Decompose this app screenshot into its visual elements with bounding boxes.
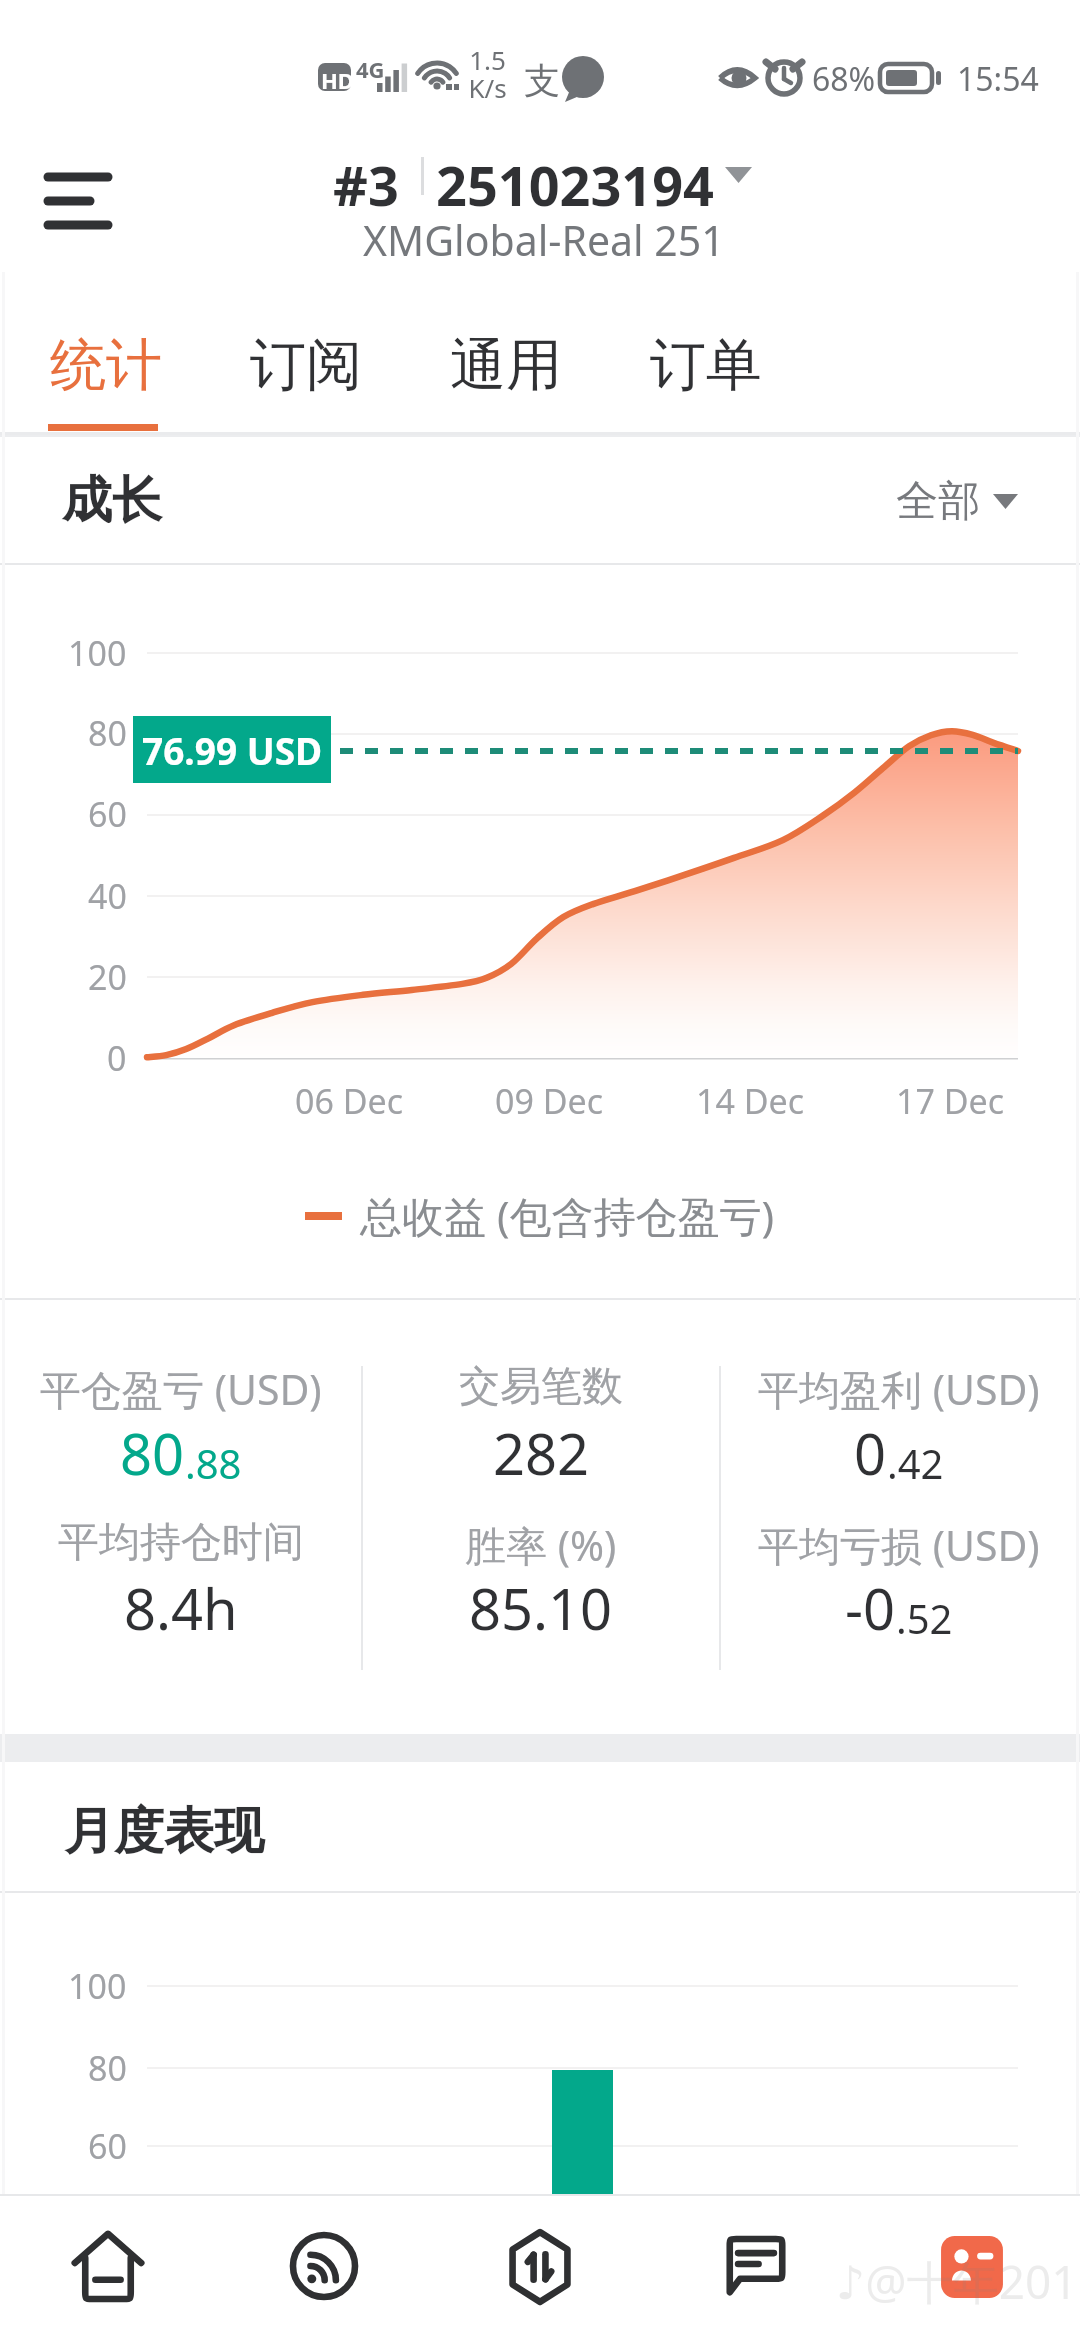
staticText: 平均持仓时间 (58, 1517, 304, 1569)
button[interactable]: 订单 (600, 285, 800, 432)
button[interactable]: Signals (216, 2196, 432, 2340)
staticText: 订单 (650, 330, 762, 401)
staticText: 80 (88, 2045, 127, 2091)
staticText: 80 (88, 710, 127, 756)
staticText: XMGlobal-Real 251 (363, 212, 725, 268)
button[interactable]: Messages (648, 2196, 864, 2340)
staticText: 06 Dec (295, 1078, 404, 1124)
staticText: 成长 (62, 469, 162, 532)
staticText: 交易笔数 (459, 1361, 623, 1413)
staticText: 17 Dec (896, 1078, 1005, 1124)
staticText: 0 (107, 1035, 127, 1081)
staticText: 全部 (896, 475, 980, 528)
staticText: HD (321, 65, 354, 95)
button[interactable]: Trade (432, 2196, 648, 2340)
staticText: 40 (88, 873, 127, 919)
staticText: 平均亏损 (USD) (758, 1517, 1040, 1573)
staticText: 1.5 K/s (468, 42, 507, 106)
staticText: 平仓盈亏 (USD) (40, 1361, 322, 1417)
staticText: 100 (68, 630, 127, 676)
staticText: 60 (88, 2123, 127, 2169)
staticText: 09 Dec (495, 1078, 604, 1124)
staticText: 15:54 (957, 57, 1039, 101)
staticText: 80 (120, 1415, 185, 1491)
staticText: 251023194 (436, 148, 714, 222)
button[interactable]: 通用 (400, 285, 600, 432)
staticText: .42 (887, 1436, 944, 1490)
button[interactable]: 订阅 (200, 285, 400, 432)
staticText: 统计 (50, 330, 162, 401)
staticText: 总收益 (包含持仓盈亏) (360, 1187, 775, 1244)
staticText: 0 (854, 1415, 887, 1491)
staticText: 支 (524, 58, 560, 103)
staticText: 通用 (450, 330, 562, 401)
staticText: 76.99 USD (142, 725, 323, 775)
staticText: ♪@十年2019 (836, 2250, 1080, 2313)
staticText: 月度表现 (64, 1800, 264, 1863)
staticText: 60 (88, 791, 127, 837)
staticText: 68% (812, 57, 876, 101)
staticText: .52 (896, 1591, 953, 1645)
staticText: -0 (845, 1570, 896, 1646)
button[interactable]: Settings (864, 2196, 1080, 2340)
staticText: 282 (493, 1415, 590, 1491)
staticText: 14 Dec (696, 1078, 805, 1124)
staticText: 8.4h (124, 1570, 238, 1646)
staticText: 20 (88, 954, 127, 1000)
button[interactable]: 全部 (870, 447, 1040, 552)
button[interactable]: Menu (28, 152, 128, 252)
staticText: 4G (356, 54, 385, 84)
staticText: 胜率 (%) (465, 1517, 617, 1573)
staticText: #3 (333, 148, 399, 222)
staticText: 100 (68, 1963, 127, 2009)
button[interactable]: Home (0, 2196, 216, 2340)
staticText: 85.10 (469, 1570, 613, 1646)
button[interactable]: 统计 (0, 285, 200, 432)
staticText: 平均盈利 (USD) (758, 1361, 1040, 1417)
staticText: .88 (185, 1436, 242, 1490)
staticText: 订阅 (250, 330, 362, 401)
